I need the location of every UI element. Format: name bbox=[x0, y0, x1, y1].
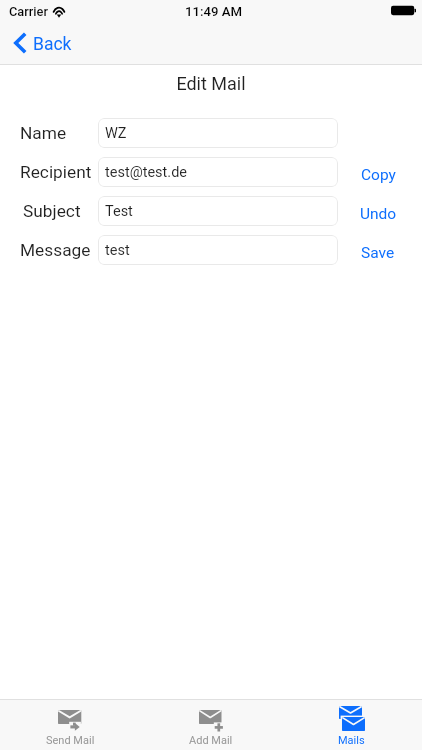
button[interactable]: Mails bbox=[281, 700, 422, 750]
other: Send Mail bbox=[58, 710, 82, 731]
staticText: Test bbox=[105, 203, 133, 220]
staticText: test@test.de bbox=[105, 164, 188, 181]
staticText: Send Mail bbox=[46, 734, 95, 747]
button[interactable]: WZ bbox=[98, 118, 338, 148]
staticText: Save bbox=[361, 244, 395, 262]
staticText: Add Mail bbox=[189, 734, 233, 747]
staticText: Message bbox=[20, 240, 91, 260]
staticText: test bbox=[105, 242, 130, 259]
staticText: Undo bbox=[360, 205, 397, 223]
staticText: WZ bbox=[105, 125, 127, 142]
staticText: Subject bbox=[23, 201, 81, 221]
button[interactable]: Copy bbox=[336, 160, 420, 190]
button[interactable]: Save bbox=[336, 238, 420, 268]
staticText: Back bbox=[33, 34, 72, 55]
staticText: Carrier bbox=[9, 4, 48, 19]
other: Mails bbox=[339, 706, 365, 731]
button[interactable]: Test bbox=[98, 196, 338, 226]
staticText: Edit Mail bbox=[0, 73, 422, 94]
button[interactable]: Undo bbox=[336, 199, 420, 229]
button[interactable]: Back bbox=[0, 33, 80, 55]
button[interactable]: Send Mail bbox=[0, 700, 140, 750]
staticText: 11:49 AM bbox=[185, 4, 243, 19]
staticText: Copy bbox=[361, 166, 396, 184]
button[interactable]: Add Mail bbox=[140, 700, 281, 750]
other: Add Mail bbox=[199, 710, 223, 731]
staticText: Recipient bbox=[20, 162, 92, 182]
staticText: Mails bbox=[338, 734, 365, 747]
button[interactable]: test@test.de bbox=[98, 157, 338, 187]
staticText: Name bbox=[20, 123, 67, 143]
button[interactable]: test bbox=[98, 235, 338, 265]
